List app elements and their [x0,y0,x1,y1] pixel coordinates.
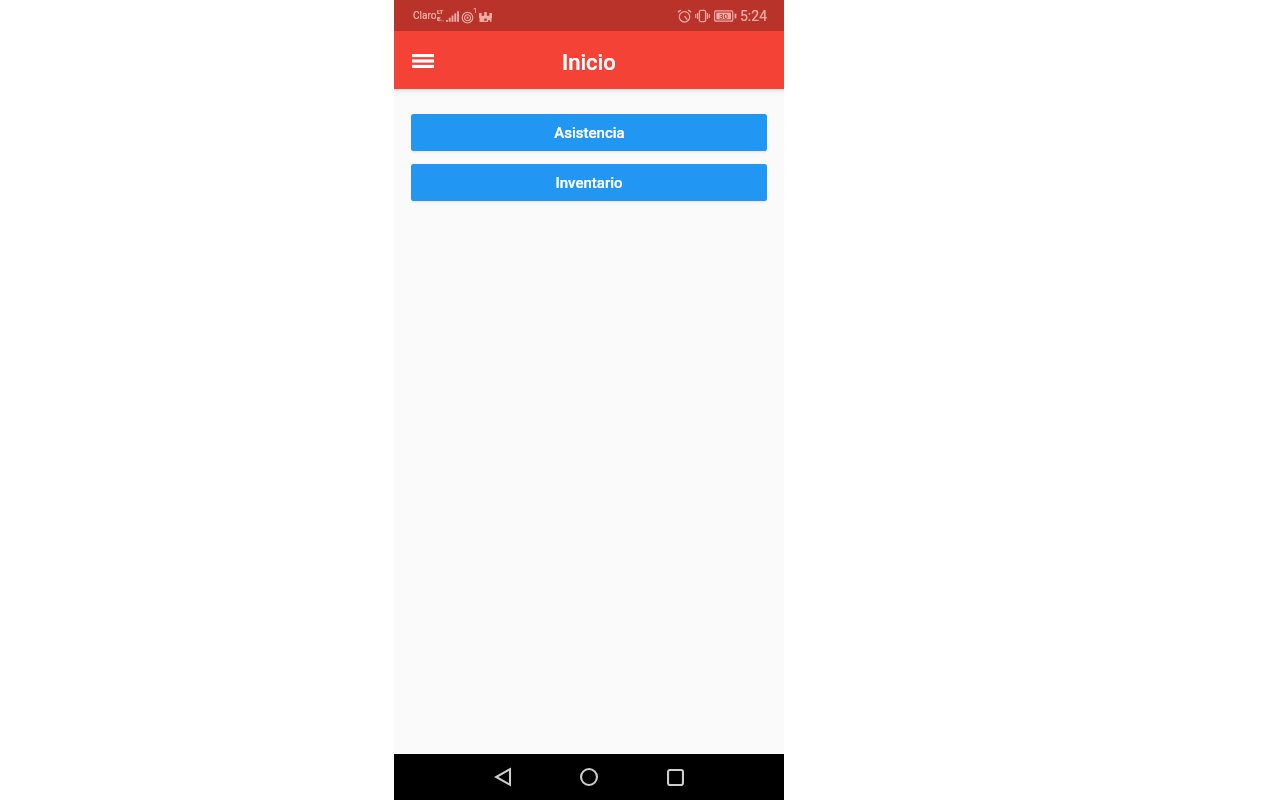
button[interactable]: Back [471,754,535,800]
button[interactable]: Home [557,754,621,800]
staticText: Inicio [562,50,616,76]
staticText: Inventario [555,174,623,192]
staticText: Asistencia [554,124,625,142]
staticText: 1 [473,6,478,15]
button[interactable]: Inventario [411,164,767,201]
staticText: LTE [437,8,445,22]
button[interactable]: Open navigation menu [402,39,444,81]
staticText: 30 [719,12,729,21]
button[interactable]: Asistencia [411,114,767,151]
staticText: 5:24 [740,8,767,24]
staticText: Claro [413,10,437,22]
button[interactable]: Recent apps [643,754,707,800]
